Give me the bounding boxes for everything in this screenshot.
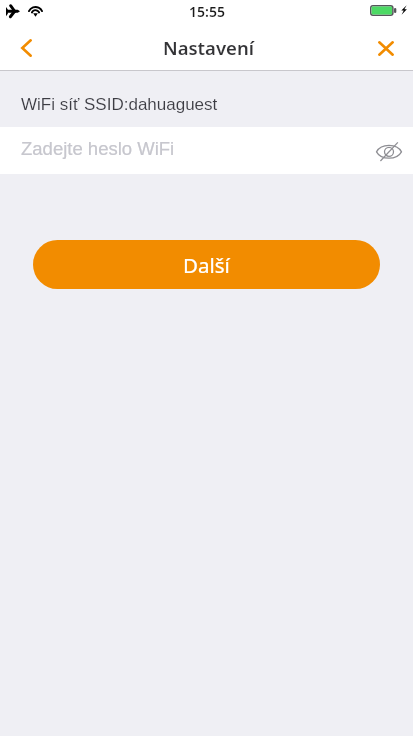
button[interactable]: Show password [370,132,408,170]
staticText: Nastavení [163,35,254,60]
staticText: WiFi síť SSID:dahuaguest [21,95,218,114]
button[interactable]: Další [33,240,380,289]
button[interactable]: Back [0,27,53,69]
staticText: 15:55 [189,2,225,21]
staticText: Zadejte heslo WiFi [21,138,370,159]
button[interactable]: Close [359,27,413,69]
staticText: Další [183,251,230,279]
